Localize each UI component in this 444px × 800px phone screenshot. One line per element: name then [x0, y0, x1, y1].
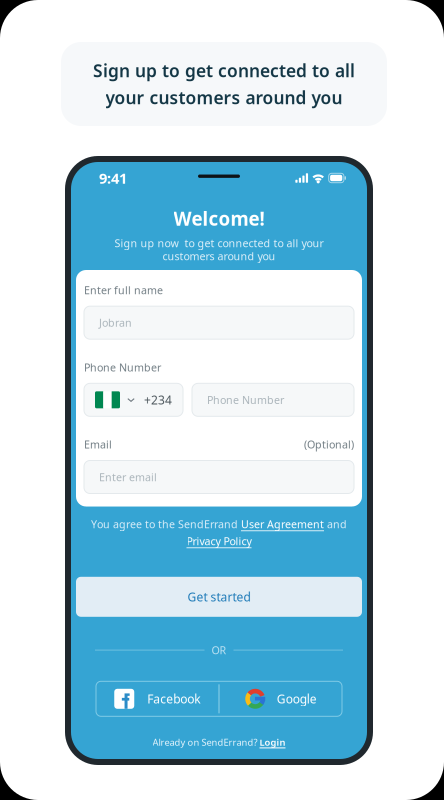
- staticText: +234: [144, 392, 172, 408]
- button[interactable]: Already on SendErrand?: [152, 736, 285, 748]
- button[interactable]: Privacy Policy: [186, 534, 251, 548]
- staticText: and: [324, 517, 347, 531]
- button[interactable]: Google: [219, 681, 342, 716]
- staticText: Phone Number: [207, 393, 284, 407]
- staticText: Login: [259, 736, 285, 748]
- staticText: You agree to the SendErrand: [91, 517, 241, 531]
- staticText: OR: [211, 643, 226, 657]
- staticText: User Agreement: [241, 517, 324, 531]
- staticText: customers around you: [162, 249, 275, 263]
- button[interactable]: Facebook: [96, 681, 218, 716]
- button[interactable]: User Agreement: [241, 517, 324, 531]
- staticText: Facebook: [147, 691, 200, 707]
- staticText: Get started: [187, 589, 250, 605]
- staticText: your customers around you: [105, 86, 342, 109]
- staticText: Google: [277, 691, 317, 707]
- staticText: Already on SendErrand?: [152, 736, 259, 748]
- staticText: Privacy Policy: [186, 534, 251, 548]
- staticText: (Optional): [304, 437, 354, 451]
- staticText: Sign up now to get connected to all your: [114, 236, 323, 250]
- staticText: Phone Number: [84, 360, 161, 374]
- staticText: 9:41: [99, 168, 127, 188]
- staticText: Welcome!: [173, 206, 264, 231]
- staticText: Sign up to get connected to all: [93, 59, 355, 82]
- staticText: Email: [84, 437, 112, 451]
- button[interactable]: Get started: [76, 577, 362, 617]
- staticText: Enter email: [99, 470, 157, 484]
- staticText: Enter full name: [84, 283, 163, 297]
- staticText: Jobran: [99, 316, 132, 330]
- button[interactable]: +234: [84, 383, 183, 416]
